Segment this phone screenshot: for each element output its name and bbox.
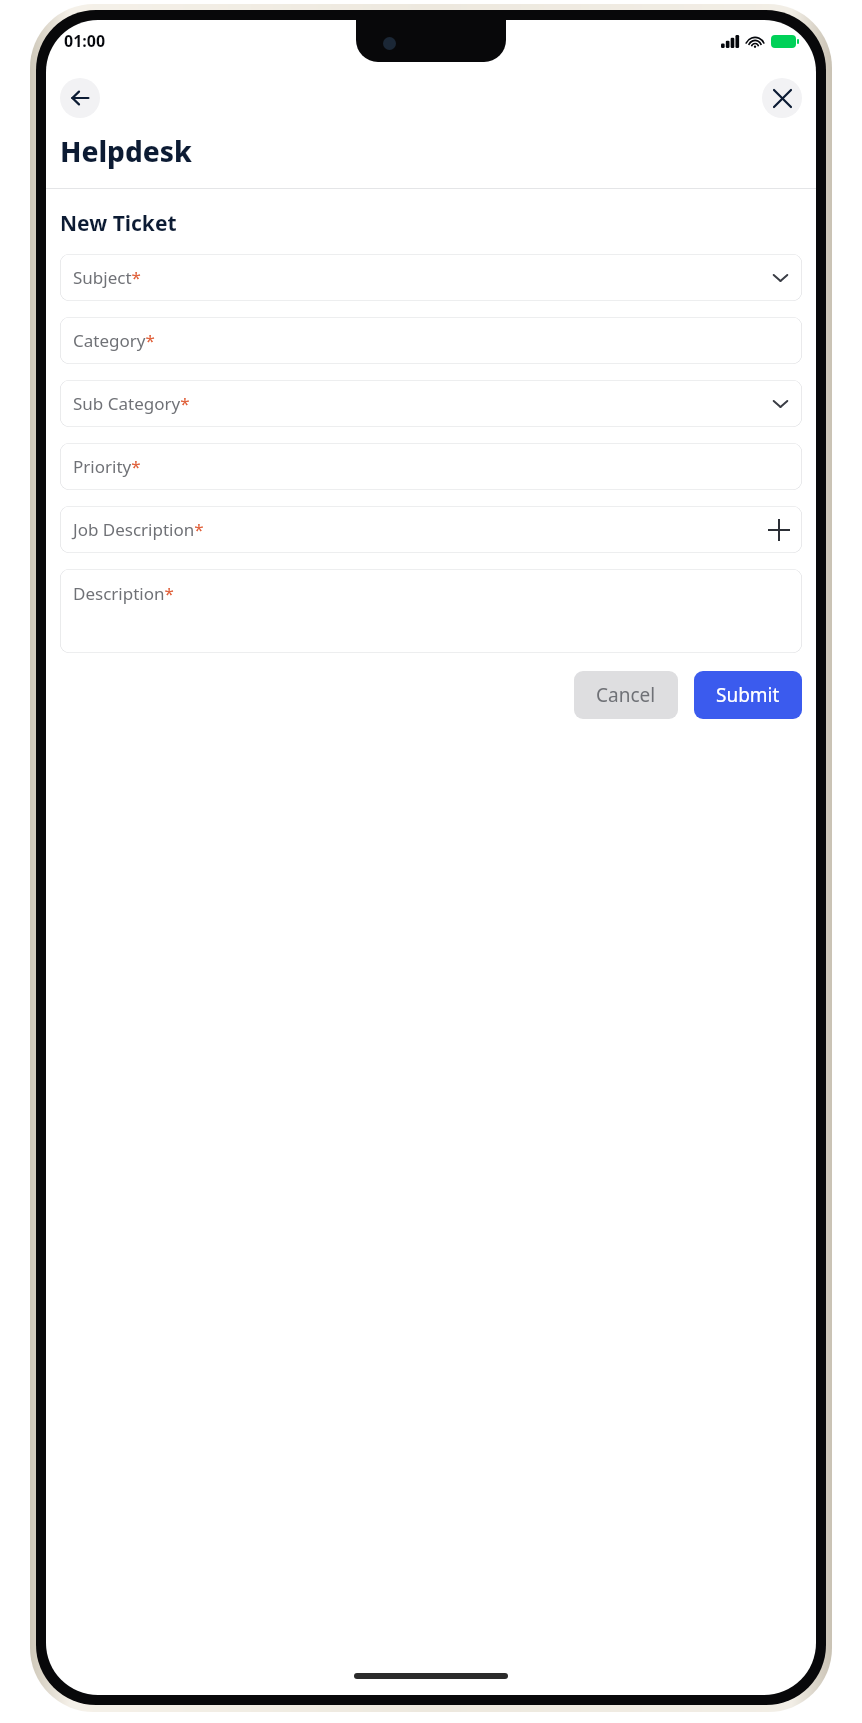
- staticText: Job Description*: [73, 518, 204, 541]
- staticText: Description*: [73, 582, 174, 605]
- staticText: Subject*: [73, 266, 141, 289]
- button[interactable]: Sub Category*: [60, 380, 802, 427]
- button[interactable]: Category*: [60, 317, 802, 364]
- button[interactable]: Job Description*: [60, 506, 802, 553]
- button[interactable]: Close: [762, 78, 802, 118]
- staticText: Sub Category*: [73, 392, 190, 415]
- button[interactable]: Priority*: [60, 443, 802, 490]
- staticText: 01:00: [64, 30, 106, 52]
- button[interactable]: Cancel: [574, 671, 678, 719]
- staticText: New Ticket: [60, 209, 177, 238]
- staticText: Submit: [716, 682, 780, 708]
- staticText: Category*: [73, 329, 155, 352]
- staticText: Helpdesk: [60, 132, 192, 170]
- button[interactable]: Submit: [694, 671, 802, 719]
- button[interactable]: Back: [60, 78, 100, 118]
- staticText: Cancel: [596, 682, 656, 708]
- button[interactable]: Subject*: [60, 254, 802, 301]
- staticText: Priority*: [73, 455, 141, 478]
- button[interactable]: Description*: [60, 569, 802, 653]
